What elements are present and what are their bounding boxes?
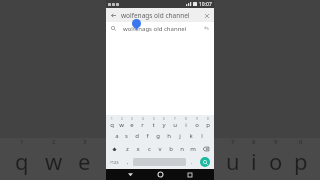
staticText: 8	[252, 138, 256, 146]
button[interactable]: Shift	[107, 143, 121, 155]
staticText: v	[158, 145, 162, 153]
button[interactable]: Backspace	[199, 143, 213, 155]
staticText: e	[78, 146, 91, 176]
button[interactable]: 3	[127, 116, 136, 129]
staticText: l	[201, 132, 203, 140]
staticText: wolfenags old channel	[121, 11, 202, 20]
staticText: 0	[299, 138, 303, 146]
button[interactable]: .	[187, 156, 196, 168]
staticText: 10:07	[199, 1, 212, 8]
button[interactable]: s	[122, 130, 131, 142]
staticText: u	[173, 121, 177, 129]
staticText: c	[148, 145, 151, 153]
staticText: w	[45, 146, 63, 176]
staticText: 4	[142, 117, 144, 121]
staticText: 1	[111, 117, 113, 121]
button[interactable]: 9	[192, 116, 202, 129]
staticText: 6	[163, 117, 165, 121]
staticText: 7	[174, 117, 176, 121]
button[interactable]: z	[122, 143, 132, 155]
staticText: k	[189, 132, 193, 140]
button[interactable]: b	[166, 143, 176, 155]
staticText: f	[146, 132, 149, 140]
staticText: ?123	[110, 160, 119, 165]
staticText: ,	[127, 159, 129, 166]
staticText: 9	[196, 117, 198, 121]
staticText: j	[179, 132, 181, 140]
staticText: i	[251, 146, 257, 176]
staticText: 0	[207, 117, 209, 121]
staticText: wolfenags old channel	[123, 25, 202, 33]
button[interactable]: 6	[159, 116, 169, 129]
staticText: x	[136, 145, 140, 153]
staticText: 9	[274, 138, 278, 146]
button[interactable]: 5	[148, 116, 158, 129]
staticText: t	[152, 121, 155, 129]
staticText: m	[190, 145, 196, 153]
button[interactable]: g	[153, 130, 163, 142]
staticText: n	[180, 145, 184, 153]
button[interactable]: 4	[137, 116, 147, 129]
button[interactable]: 2	[117, 116, 126, 129]
button[interactable]: Recents	[184, 169, 195, 180]
button[interactable]: Back	[125, 169, 136, 180]
button[interactable]: j	[175, 130, 185, 142]
staticText: 1	[20, 138, 24, 146]
staticText: d	[135, 132, 139, 140]
staticText: i	[185, 121, 187, 129]
button[interactable]: Search	[200, 157, 210, 167]
button[interactable]: l	[197, 130, 207, 142]
button[interactable]: v	[155, 143, 165, 155]
button[interactable]: h	[164, 130, 174, 142]
button[interactable]: n	[177, 143, 187, 155]
staticText: r	[141, 121, 144, 129]
staticText: 8	[185, 117, 187, 121]
button[interactable]: Home	[155, 169, 166, 180]
staticText: g	[156, 132, 160, 140]
button[interactable]: f	[142, 130, 152, 142]
button[interactable]: Insert suggestion	[202, 24, 211, 33]
button[interactable]: ,	[123, 156, 132, 168]
staticText: 5	[153, 117, 155, 121]
staticText: q	[15, 146, 29, 176]
button[interactable]: Back	[106, 8, 214, 22]
staticText: a	[115, 132, 119, 140]
button[interactable]: Clear	[202, 11, 211, 20]
button[interactable]: 8	[181, 116, 191, 129]
button[interactable]: 7	[170, 116, 180, 129]
button[interactable]: m	[188, 143, 198, 155]
staticText: q	[110, 121, 114, 129]
button[interactable]: k	[186, 130, 196, 142]
button[interactable]: wolfenags old channel	[106, 22, 214, 35]
staticText: e	[130, 121, 134, 129]
staticText: 2	[52, 138, 56, 146]
button[interactable]: d	[132, 130, 141, 142]
staticText: 7	[231, 138, 235, 146]
button[interactable]: c	[144, 143, 154, 155]
staticText: y	[162, 121, 166, 129]
staticText: .	[191, 159, 193, 166]
staticText: b	[169, 145, 173, 153]
staticText: p	[294, 146, 308, 176]
staticText: z	[126, 145, 129, 153]
button[interactable]: a	[112, 130, 121, 142]
staticText: o	[195, 121, 199, 129]
staticText: p	[206, 121, 210, 129]
button[interactable]: 0	[203, 116, 213, 129]
staticText: o	[269, 146, 283, 176]
button[interactable]: Back	[109, 11, 118, 20]
button[interactable]: 1	[107, 116, 116, 129]
staticText: u	[226, 146, 240, 176]
staticText: s	[125, 132, 128, 140]
button[interactable]: x	[133, 143, 143, 155]
staticText: 2	[121, 117, 123, 121]
button[interactable]: ?123	[107, 156, 122, 168]
staticText: 3	[131, 117, 133, 121]
staticText: 3	[83, 138, 87, 146]
staticText: h	[167, 132, 171, 140]
staticText: w	[119, 121, 124, 129]
